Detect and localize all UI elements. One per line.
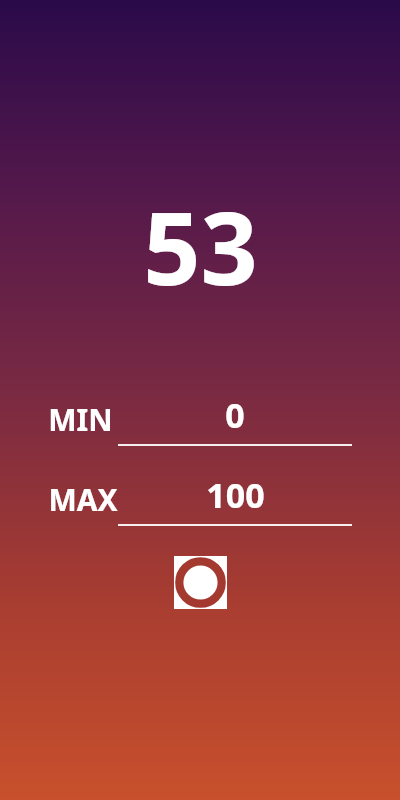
staticText: MIN [48, 399, 113, 440]
staticText: 100 [206, 472, 265, 518]
button[interactable]: Stop [174, 556, 227, 609]
button[interactable]: MAX [48, 472, 352, 526]
staticText: 53 [143, 178, 258, 314]
staticText: 0 [225, 392, 245, 438]
staticText: MAX [48, 479, 118, 520]
button[interactable]: MIN [48, 392, 352, 446]
